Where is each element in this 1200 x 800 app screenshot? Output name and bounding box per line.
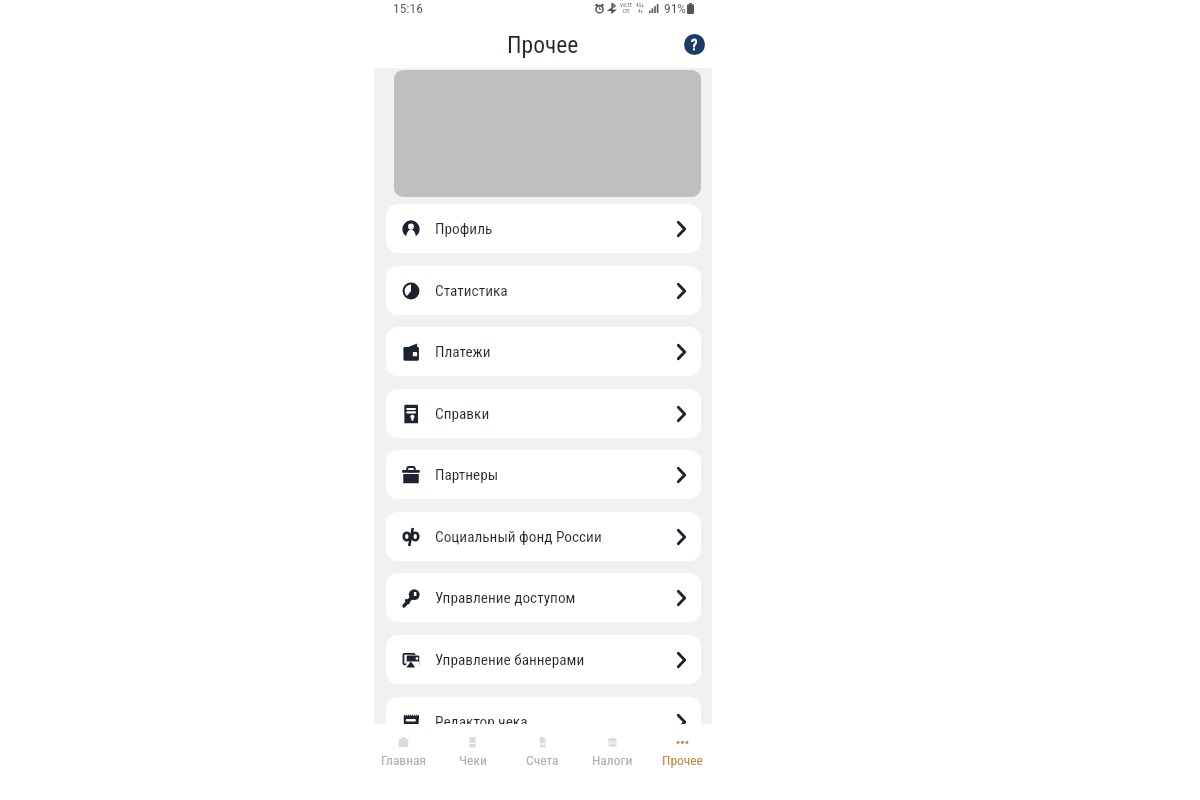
button[interactable]: Управление доступом [386,573,701,622]
staticText: Чеки [459,752,487,768]
staticText: Статистика [435,282,508,300]
staticText: Редактор чека [435,713,528,724]
staticText: Прочее [507,31,579,59]
staticText: VoLTE [620,2,632,8]
button[interactable]: Налоги [577,724,647,785]
staticText: LTE [623,8,630,14]
button[interactable]: Управление баннерами [386,635,701,684]
button[interactable]: Статистика [386,266,701,315]
staticText: Управление доступом [435,589,576,607]
staticText: Управление баннерами [435,651,585,669]
staticText: 4+ [638,8,643,14]
button[interactable]: Help [684,34,705,55]
staticText: Платежи [435,343,491,361]
staticText: Счета [526,752,559,768]
button[interactable]: Партнеры [386,450,701,499]
staticText: Социальный фонд России [435,528,602,546]
staticText: Профиль [435,220,493,238]
button[interactable]: Редактор чека [386,697,701,724]
button[interactable]: Социальный фонд России [386,512,701,561]
staticText: 91% [664,0,686,16]
staticText: Справки [435,405,490,423]
button[interactable]: Справки [386,389,701,438]
button[interactable]: Счета [507,724,577,785]
staticText: 15:16 [393,0,423,16]
staticText: Прочее [662,752,703,768]
button[interactable]: Профиль [386,204,701,253]
button[interactable]: Чеки [438,724,507,785]
staticText: 4G+ [636,2,644,8]
staticText: Налоги [592,752,633,768]
button[interactable]: Прочее [647,724,717,785]
staticText: Партнеры [435,466,499,484]
button[interactable]: Платежи [386,327,701,376]
button[interactable]: Главная [369,724,438,785]
staticText: ? [691,36,698,54]
staticText: Главная [381,752,427,768]
